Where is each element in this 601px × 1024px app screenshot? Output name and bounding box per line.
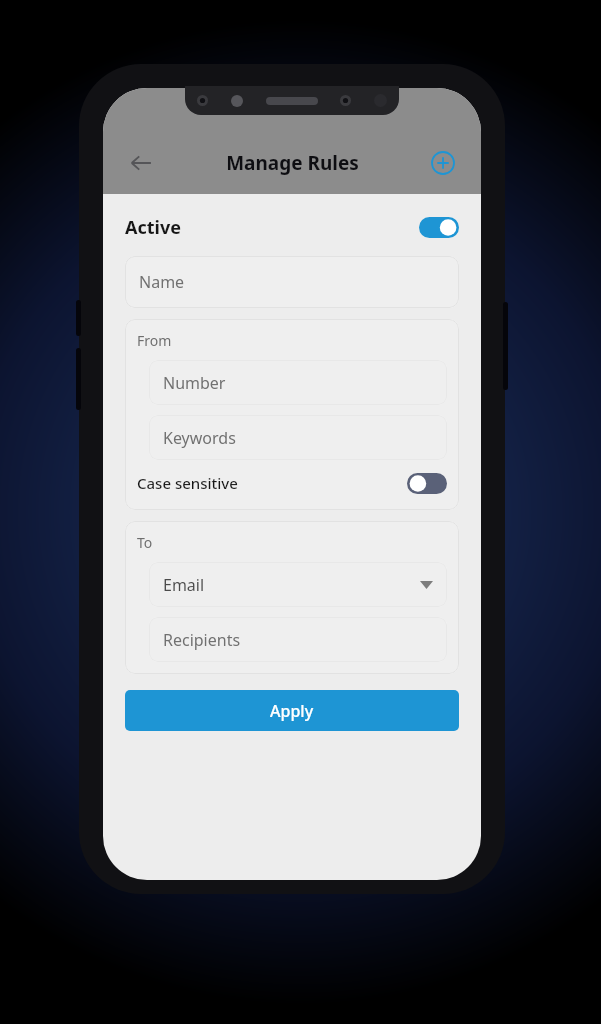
button[interactable]: Email xyxy=(149,562,447,607)
button[interactable]: Disabled toggle xyxy=(407,473,447,494)
staticText: Case sensitive xyxy=(137,473,238,493)
button[interactable]: Add rule xyxy=(423,143,463,183)
button[interactable]: Back xyxy=(121,143,161,183)
button[interactable]: Apply xyxy=(125,690,459,731)
staticText: Email xyxy=(163,574,205,596)
staticText: Name xyxy=(139,271,185,293)
button[interactable]: Case sensitive xyxy=(137,468,447,498)
button[interactable]: Active xyxy=(125,210,459,244)
staticText: Recipients xyxy=(163,629,241,651)
staticText: Manage Rules xyxy=(226,150,359,176)
staticText: Keywords xyxy=(163,427,236,449)
staticText: Number xyxy=(163,372,226,394)
button[interactable]: Enabled toggle xyxy=(419,217,459,238)
button[interactable]: Name xyxy=(125,256,459,308)
staticText: Apply xyxy=(270,700,314,722)
staticText: From xyxy=(137,331,172,350)
button[interactable]: Recipients xyxy=(149,617,447,662)
button[interactable]: Keywords xyxy=(149,415,447,460)
staticText: To xyxy=(137,533,153,552)
staticText: Active xyxy=(125,215,181,240)
button[interactable]: Number xyxy=(149,360,447,405)
